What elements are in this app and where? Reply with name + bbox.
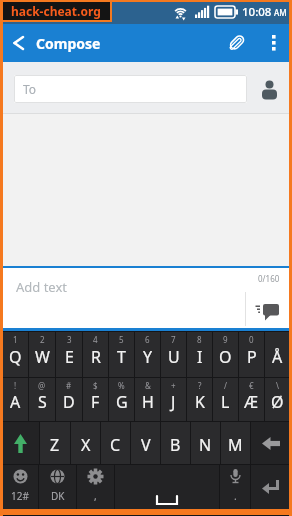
button[interactable] [252, 299, 282, 325]
staticText: Q [9, 346, 22, 368]
button[interactable]: 1 [2, 332, 28, 377]
staticText: X [81, 434, 91, 456]
staticText: hack-cheat.org [11, 3, 101, 19]
button[interactable]: N [191, 422, 220, 464]
staticText: $ [93, 380, 98, 391]
staticText: E [65, 346, 74, 368]
staticText: 4 [93, 334, 98, 345]
staticText: H [142, 391, 154, 413]
button[interactable]: C [101, 422, 130, 464]
staticText: Æ [244, 391, 259, 413]
staticText: Ø [271, 391, 284, 413]
button[interactable]: V [131, 422, 160, 464]
staticText: F [91, 391, 100, 413]
button[interactable]: 7 [161, 332, 186, 377]
staticText: I [197, 346, 203, 368]
staticText: DK [51, 489, 65, 503]
button[interactable]: € [239, 378, 264, 421]
button[interactable]: % [109, 378, 134, 421]
staticText: T [117, 346, 126, 368]
staticText: 7 [171, 334, 176, 345]
staticText: 6 [145, 334, 150, 345]
button[interactable] [256, 24, 292, 62]
button[interactable]: 5 [109, 332, 134, 377]
staticText: W [35, 346, 50, 368]
button[interactable]: $ [83, 378, 108, 421]
button[interactable]: To [14, 75, 247, 103]
staticText: 9 [223, 334, 228, 345]
button[interactable] [2, 422, 39, 464]
button[interactable]: 2 [29, 332, 55, 377]
button[interactable]: Z [40, 422, 70, 464]
staticText: J [171, 391, 176, 413]
staticText: Compose [36, 34, 101, 53]
button[interactable] [251, 465, 290, 509]
staticText: , [94, 489, 97, 503]
button[interactable]: # [56, 378, 82, 421]
staticText: @ [38, 380, 46, 391]
button[interactable]: 4 [83, 332, 108, 377]
button[interactable]: @ [29, 378, 55, 421]
staticText: N [199, 434, 212, 456]
staticText: € [249, 380, 254, 391]
staticText: & [145, 380, 151, 391]
button[interactable]: ? [187, 378, 212, 421]
staticText: L [221, 391, 230, 413]
staticText: A [10, 391, 21, 413]
button[interactable]: / [213, 378, 238, 421]
button[interactable] [251, 422, 290, 464]
staticText: 0/160 [258, 273, 280, 284]
button[interactable]: . [220, 465, 250, 509]
staticText: M [228, 434, 243, 456]
staticText: C [110, 434, 121, 456]
button[interactable] [115, 465, 219, 509]
button[interactable]: & [135, 378, 160, 421]
staticText: ? [198, 380, 202, 391]
button[interactable]: + [161, 378, 186, 421]
staticText: . [234, 489, 237, 503]
button[interactable]: B [161, 422, 190, 464]
staticText: O [219, 346, 232, 368]
staticText: AM [274, 7, 287, 18]
staticText: ! [14, 380, 17, 391]
button[interactable] [258, 77, 280, 99]
staticText: 2 [40, 334, 45, 345]
button[interactable]: , [77, 465, 114, 509]
staticText: 3 [67, 334, 72, 345]
staticText: D [63, 391, 75, 413]
staticText: S [38, 391, 47, 413]
staticText: 5 [119, 334, 124, 345]
button[interactable]: 6 [135, 332, 160, 377]
staticText: \ [276, 380, 279, 391]
staticText: 1 [13, 334, 18, 345]
staticText: U [168, 346, 180, 368]
staticText: # [66, 380, 72, 391]
button[interactable]: Å [265, 332, 290, 377]
button[interactable]: 8 [187, 332, 212, 377]
staticText: 10:08 [242, 4, 272, 20]
staticText: 12# [11, 489, 29, 503]
staticText: % [118, 380, 125, 391]
staticText: To [23, 81, 37, 97]
staticText: Y [143, 346, 153, 368]
staticText: P [247, 346, 257, 368]
button[interactable]: 9 [213, 332, 238, 377]
button[interactable]: M [221, 422, 250, 464]
button[interactable]: DK [39, 465, 76, 509]
button[interactable]: \ [265, 378, 290, 421]
button[interactable]: X [71, 422, 100, 464]
button[interactable]: 3 [56, 332, 82, 377]
button[interactable] [216, 24, 256, 62]
staticText: K [195, 391, 205, 413]
button[interactable]: 0 [239, 332, 264, 377]
staticText: Add text [16, 278, 68, 296]
button[interactable]: 12# [2, 465, 38, 509]
button[interactable]: ! [2, 378, 28, 421]
staticText: B [170, 434, 181, 456]
staticText: 0 [249, 334, 254, 345]
button[interactable] [0, 24, 36, 62]
staticText: G [116, 391, 128, 413]
staticText: + [171, 380, 176, 391]
staticText: Å [272, 346, 283, 368]
staticText: / [224, 380, 227, 391]
